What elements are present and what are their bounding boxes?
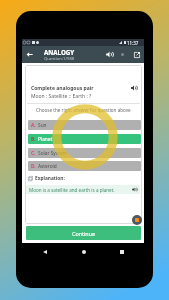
staticText: Planet [38,136,53,143]
staticText: Choose the right answer for question abo… [36,107,131,113]
button[interactable]: Share [131,46,143,63]
button[interactable]: D. [28,161,141,171]
staticText: C. [31,150,36,157]
staticText: 11:37 [127,40,139,46]
button[interactable]: C. [28,148,141,158]
button[interactable]: Back [38,245,51,258]
staticText: Moon is a satellite and earth is a plane… [29,187,115,193]
staticText: Asteroid [38,163,57,170]
staticText: Question:1/988 [44,56,75,62]
staticText: ANALOGY [44,48,75,56]
staticText: Solar System [38,150,67,157]
staticText: Complete analogous pair [31,85,94,92]
staticText: Sun [38,122,47,129]
staticText: B. [31,136,36,143]
button[interactable]: Continue [26,226,141,240]
button[interactable]: Recents [115,245,128,258]
button[interactable]: B. [28,134,141,144]
staticText: Moon : Satellite :: Earth : ? [31,93,92,100]
button[interactable]: Sound [103,46,115,63]
staticText: D. [31,163,36,170]
staticText: Explanation: [35,175,65,182]
button[interactable]: More options [116,46,128,63]
staticText: A. [31,122,36,129]
button[interactable]: Back [22,46,36,63]
button[interactable]: Home [77,245,90,258]
button[interactable]: Play question audio [129,83,139,93]
button[interactable]: Report question [132,215,142,225]
button[interactable]: Play explanation audio [130,185,139,194]
staticText: Continue [72,230,96,237]
button[interactable]: A. [28,120,141,130]
